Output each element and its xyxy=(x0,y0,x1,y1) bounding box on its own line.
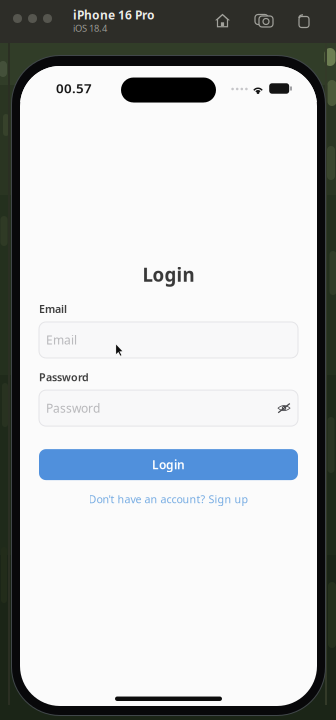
button[interactable]: Home xyxy=(211,9,234,32)
staticText: Login xyxy=(142,262,194,287)
button[interactable]: Don't have an account? Sign up xyxy=(39,492,298,506)
button[interactable]: Rotate xyxy=(292,9,314,32)
staticText: iPhone 16 Pro xyxy=(73,7,155,23)
staticText: Don't have an account? Sign up xyxy=(88,492,248,506)
staticText: Password xyxy=(39,370,89,384)
button[interactable]: Show password xyxy=(277,403,291,414)
staticText: 00.57 xyxy=(56,79,92,97)
button[interactable]: Login xyxy=(39,449,298,480)
button[interactable]: Screenshot xyxy=(250,9,278,32)
staticText: iOS 18.4 xyxy=(73,22,107,34)
staticText: Email xyxy=(39,302,67,316)
staticText: Password xyxy=(46,400,100,416)
staticText: Login xyxy=(152,457,185,473)
staticText: Email xyxy=(46,332,77,348)
